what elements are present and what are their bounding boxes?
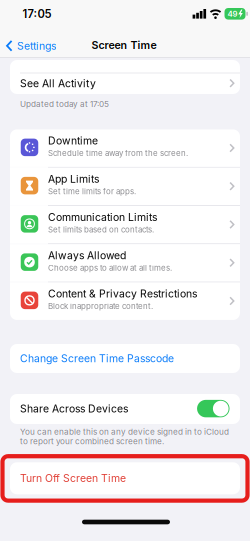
- button[interactable]: Content & Privacy Restrictions: [10, 282, 240, 320]
- staticText: Block inappropriate content.: [48, 301, 153, 311]
- staticText: Schedule time away from the screen.: [48, 148, 188, 158]
- button[interactable]: Share Across Devices: [10, 394, 240, 424]
- staticText: Communication Limits: [48, 211, 157, 223]
- staticText: Settings: [17, 40, 56, 52]
- staticText: 49: [227, 9, 237, 18]
- staticText: Set limits based on contacts.: [48, 225, 154, 234]
- staticText: Choose apps to allow at all times.: [48, 263, 172, 273]
- staticText: App Limits: [48, 173, 99, 185]
- button[interactable]: Always Allowed: [10, 244, 240, 282]
- button[interactable]: See All Activity: [10, 60, 240, 94]
- staticText: Change Screen Time Passcode: [20, 352, 174, 365]
- staticText: You can enable this on any device signed…: [20, 427, 229, 437]
- button[interactable]: App Limits: [10, 168, 240, 205]
- staticText: Set time limits for apps.: [48, 187, 136, 196]
- staticText: Screen Time: [91, 38, 156, 51]
- staticText: Downtime: [48, 134, 98, 147]
- staticText: See All Activity: [20, 77, 96, 90]
- staticText: Always Allowed: [48, 249, 126, 262]
- staticText: 17:05: [22, 7, 51, 21]
- staticText: Turn Off Screen Time: [20, 472, 126, 485]
- button[interactable]: Turn Off Screen Time: [10, 462, 240, 494]
- button[interactable]: Back to Settings: [4, 37, 58, 55]
- button[interactable]: Downtime: [10, 129, 240, 167]
- button[interactable]: Change Screen Time Passcode: [10, 344, 240, 373]
- staticText: Updated today at 17:05: [20, 99, 109, 109]
- staticText: to report your combined screen time.: [20, 436, 164, 446]
- staticText: Share Across Devices: [20, 402, 128, 415]
- staticText: Content & Privacy Restrictions: [48, 287, 197, 300]
- button[interactable]: Communication Limits: [10, 206, 240, 243]
